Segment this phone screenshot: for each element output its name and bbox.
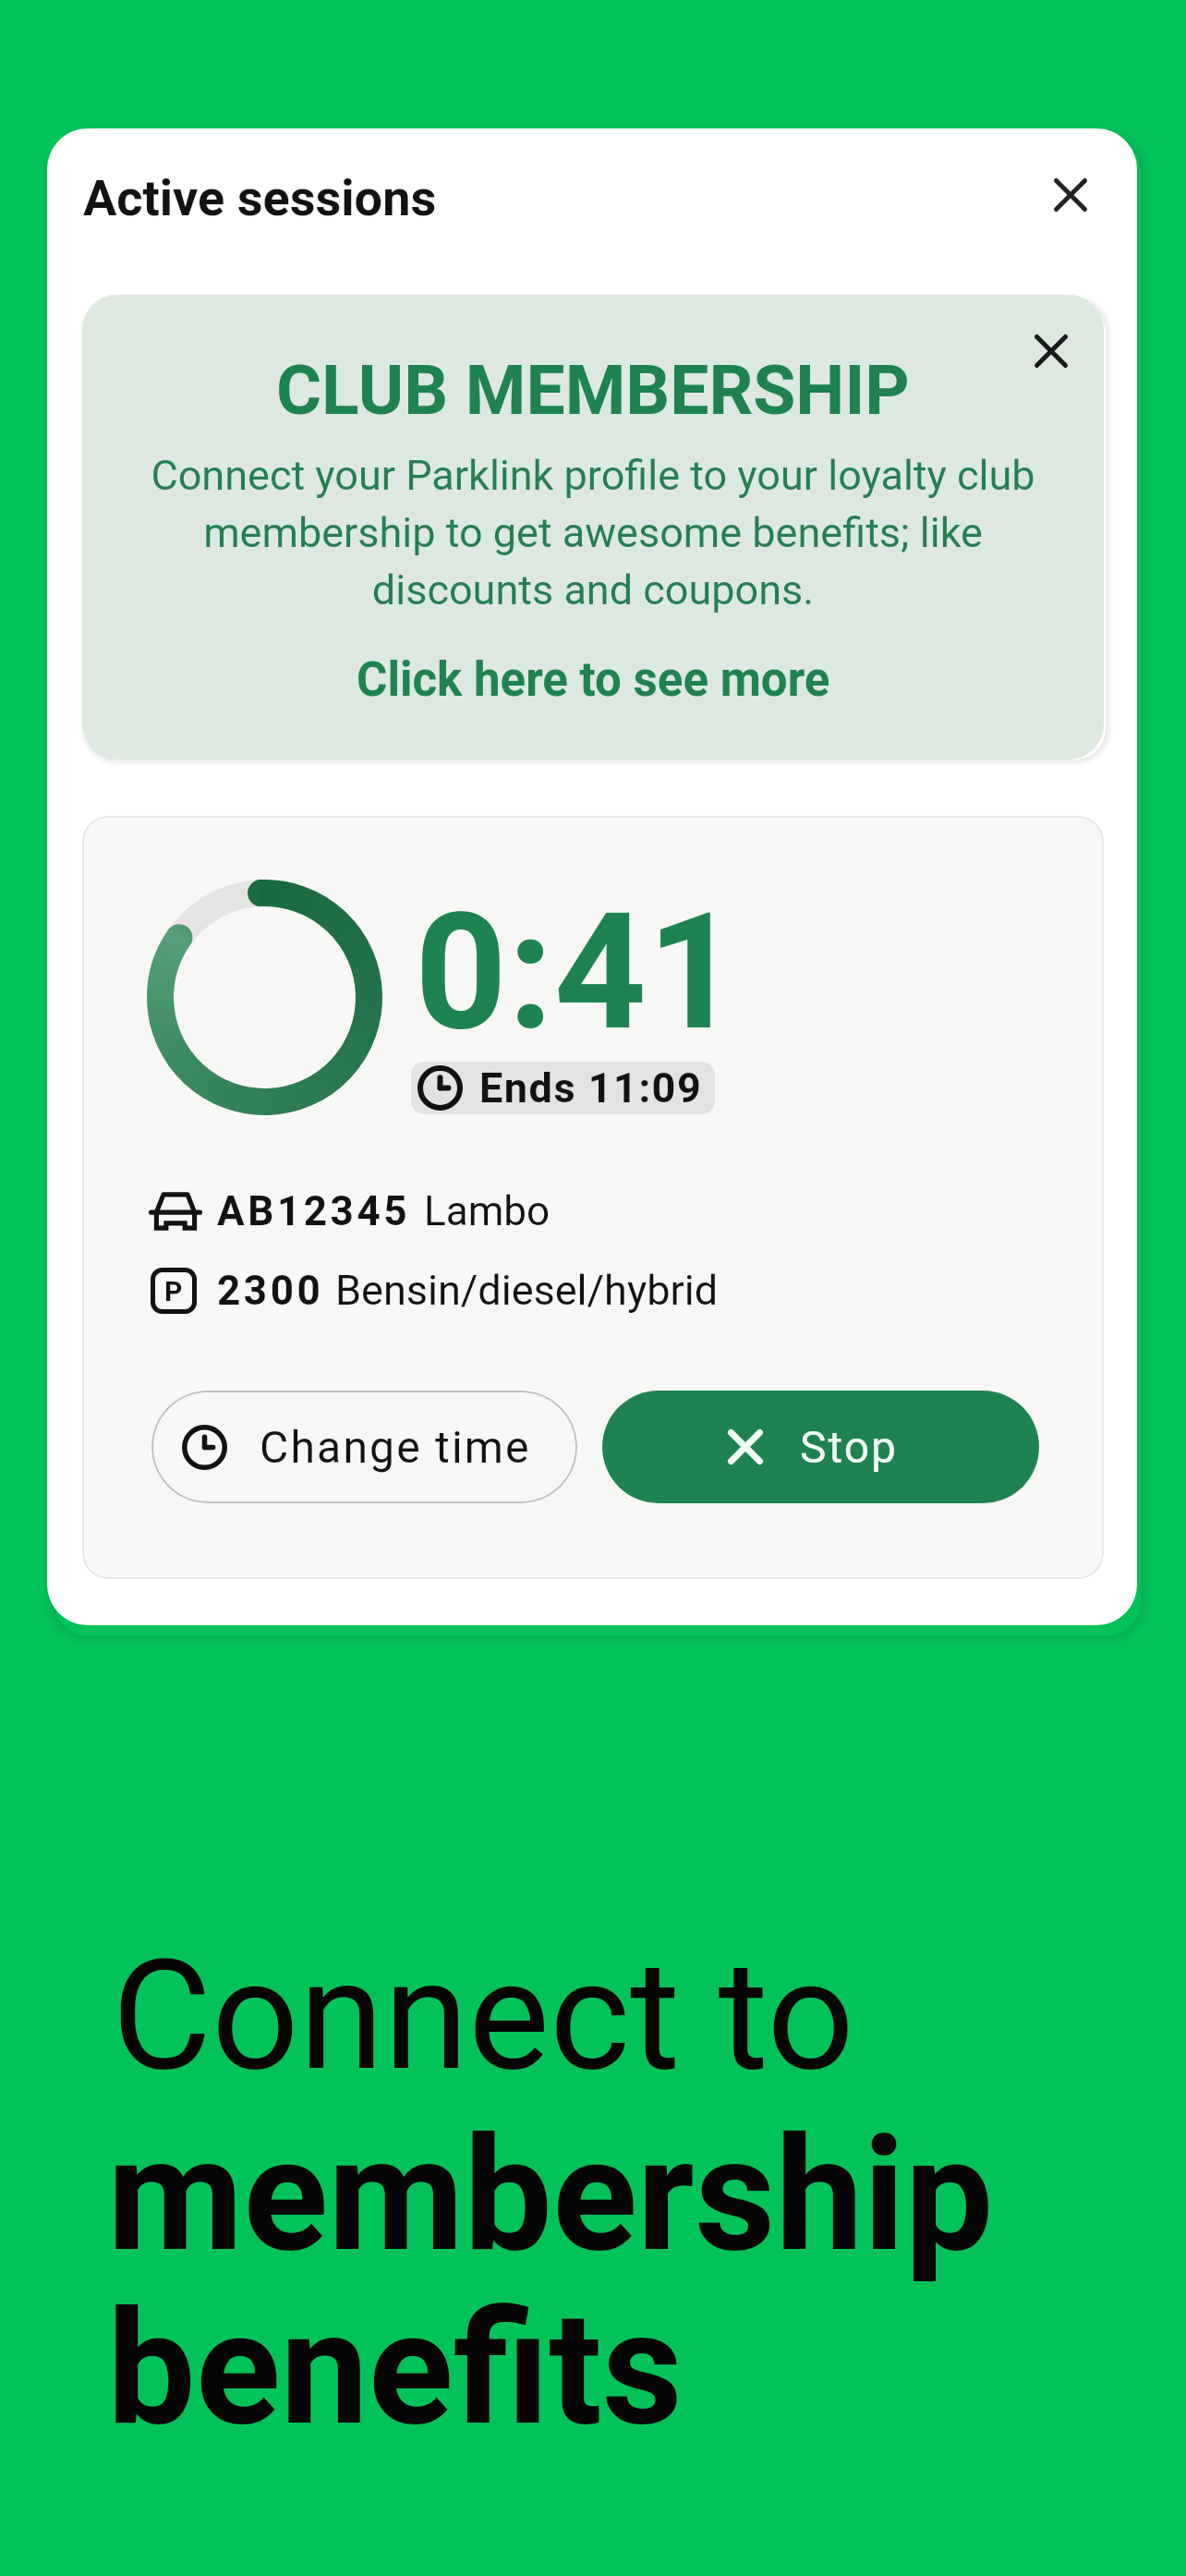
staticText: Stop (800, 1421, 899, 1473)
staticText: AB12345 (217, 1187, 411, 1235)
staticText: Lambo (424, 1187, 551, 1235)
staticText: 0:41 (415, 879, 741, 1067)
staticText: 2300 (217, 1267, 324, 1315)
button[interactable]: CLUB MEMBERSHIP (82, 295, 1104, 759)
button[interactable]: Close (1035, 159, 1107, 231)
staticText: Change time (260, 1421, 531, 1473)
button[interactable]: Stop (602, 1391, 1039, 1503)
staticText: Active sessions (83, 169, 437, 227)
staticText: Ends 11:09 (479, 1063, 703, 1112)
staticText: CLUB MEMBERSHIP (276, 349, 910, 431)
staticText: Bensin/diesel/hybrid (335, 1266, 719, 1315)
staticText: membership (107, 2103, 994, 2287)
staticText: Click here to see more (357, 652, 830, 708)
button[interactable]: Dismiss club membership (1018, 318, 1084, 384)
staticText: Connect to (112, 1926, 854, 2106)
staticText: benefits (107, 2277, 684, 2461)
staticText: P (164, 1275, 183, 1307)
button[interactable]: Change time (151, 1391, 577, 1503)
staticText: Connect your Parklink profile to your lo… (151, 451, 1035, 614)
